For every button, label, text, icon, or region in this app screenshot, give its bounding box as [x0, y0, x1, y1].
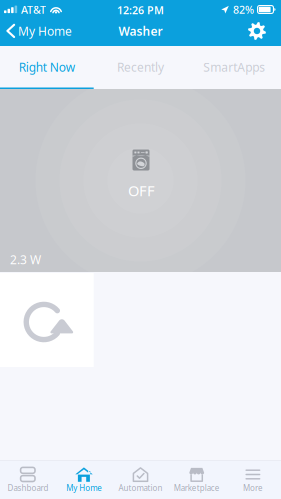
button[interactable]: Right Now [0, 46, 94, 88]
staticText: 2.3 W [10, 252, 41, 267]
staticText: 82% [233, 2, 254, 17]
staticText: Washer [118, 23, 162, 39]
staticText: Dashboard [8, 483, 49, 493]
staticText: My Home [18, 23, 72, 39]
staticText: OFF [128, 181, 155, 200]
staticText: Right Now [19, 59, 75, 75]
button[interactable]: Washer, OFF, 2.3 watts [0, 89, 281, 272]
staticText: Marketplace [174, 483, 220, 493]
button[interactable]: My Home [6, 18, 84, 44]
button[interactable]: Recently [94, 46, 187, 88]
staticText: More [243, 483, 263, 493]
button[interactable]: Dashboard [0, 461, 56, 499]
button[interactable]: SmartApps [187, 46, 281, 88]
staticText: My Home [66, 483, 102, 493]
button[interactable]: Automation [112, 461, 169, 499]
staticText: Automation [118, 483, 162, 493]
staticText: SmartApps [203, 59, 265, 75]
button[interactable]: My Home [56, 461, 112, 499]
button[interactable]: Marketplace [169, 461, 225, 499]
staticText: Recently [117, 59, 164, 75]
staticText: AT&T [21, 2, 46, 17]
button[interactable]: More [225, 461, 281, 499]
staticText: 12:26 PM [117, 3, 164, 17]
button[interactable]: Settings [244, 18, 270, 44]
button[interactable]: Refresh [0, 273, 94, 367]
